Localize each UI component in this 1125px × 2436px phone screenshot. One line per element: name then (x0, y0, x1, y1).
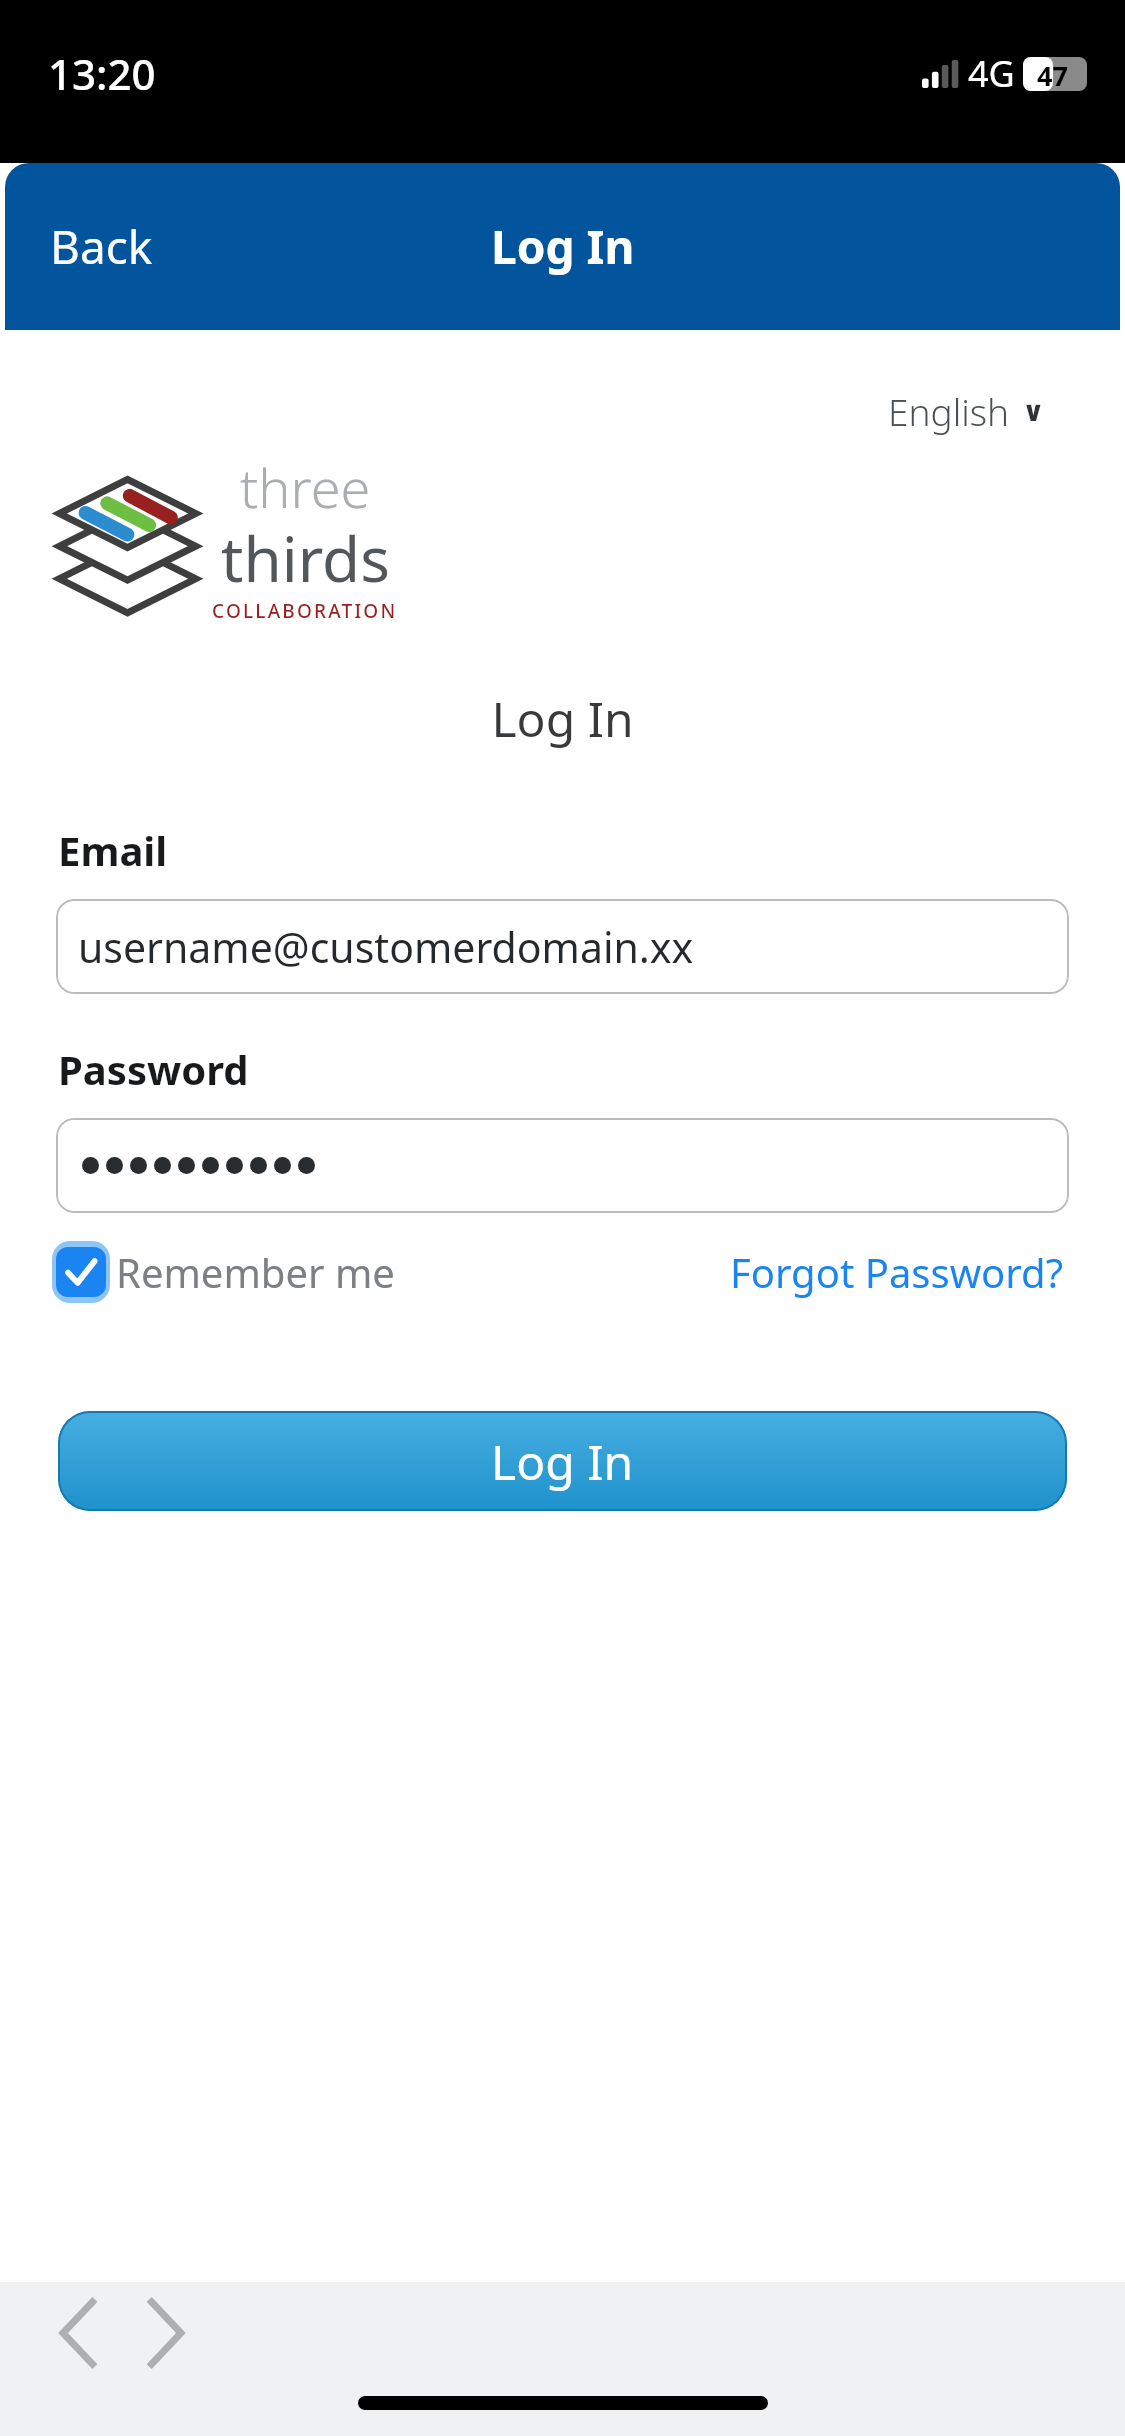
button[interactable]: username@customerdomain.xx (56, 899, 1069, 994)
button[interactable]: Back (5, 201, 183, 292)
button[interactable]: Back (36, 2290, 122, 2376)
button[interactable] (56, 1118, 1069, 1213)
staticText: COLLABORATION (212, 598, 398, 624)
staticText: thirds (221, 516, 390, 600)
staticText: Back (50, 215, 153, 278)
staticText: Remember me (116, 1245, 395, 1299)
staticText: Password (58, 1042, 249, 1096)
button[interactable]: Remember me (52, 1241, 395, 1303)
staticText: three (240, 450, 371, 524)
staticText: Forgot Password? (730, 1245, 1063, 1299)
staticText: Log In (491, 1429, 634, 1494)
staticText: 13:20 (48, 45, 156, 102)
staticText: English (888, 386, 1010, 436)
staticText: Log In (0, 686, 1125, 751)
button[interactable]: Forgot Password? (730, 1245, 1063, 1299)
staticText: 4G (968, 49, 1015, 98)
button[interactable]: Forward (122, 2290, 208, 2376)
staticText: Log In (491, 215, 635, 278)
staticText: username@customerdomain.xx (78, 919, 694, 975)
staticText: ∨ (1022, 395, 1045, 428)
staticText: 47 (1037, 57, 1068, 91)
button[interactable]: Log In (58, 1411, 1067, 1511)
button[interactable]: English (880, 378, 1053, 444)
staticText: Email (58, 823, 168, 877)
